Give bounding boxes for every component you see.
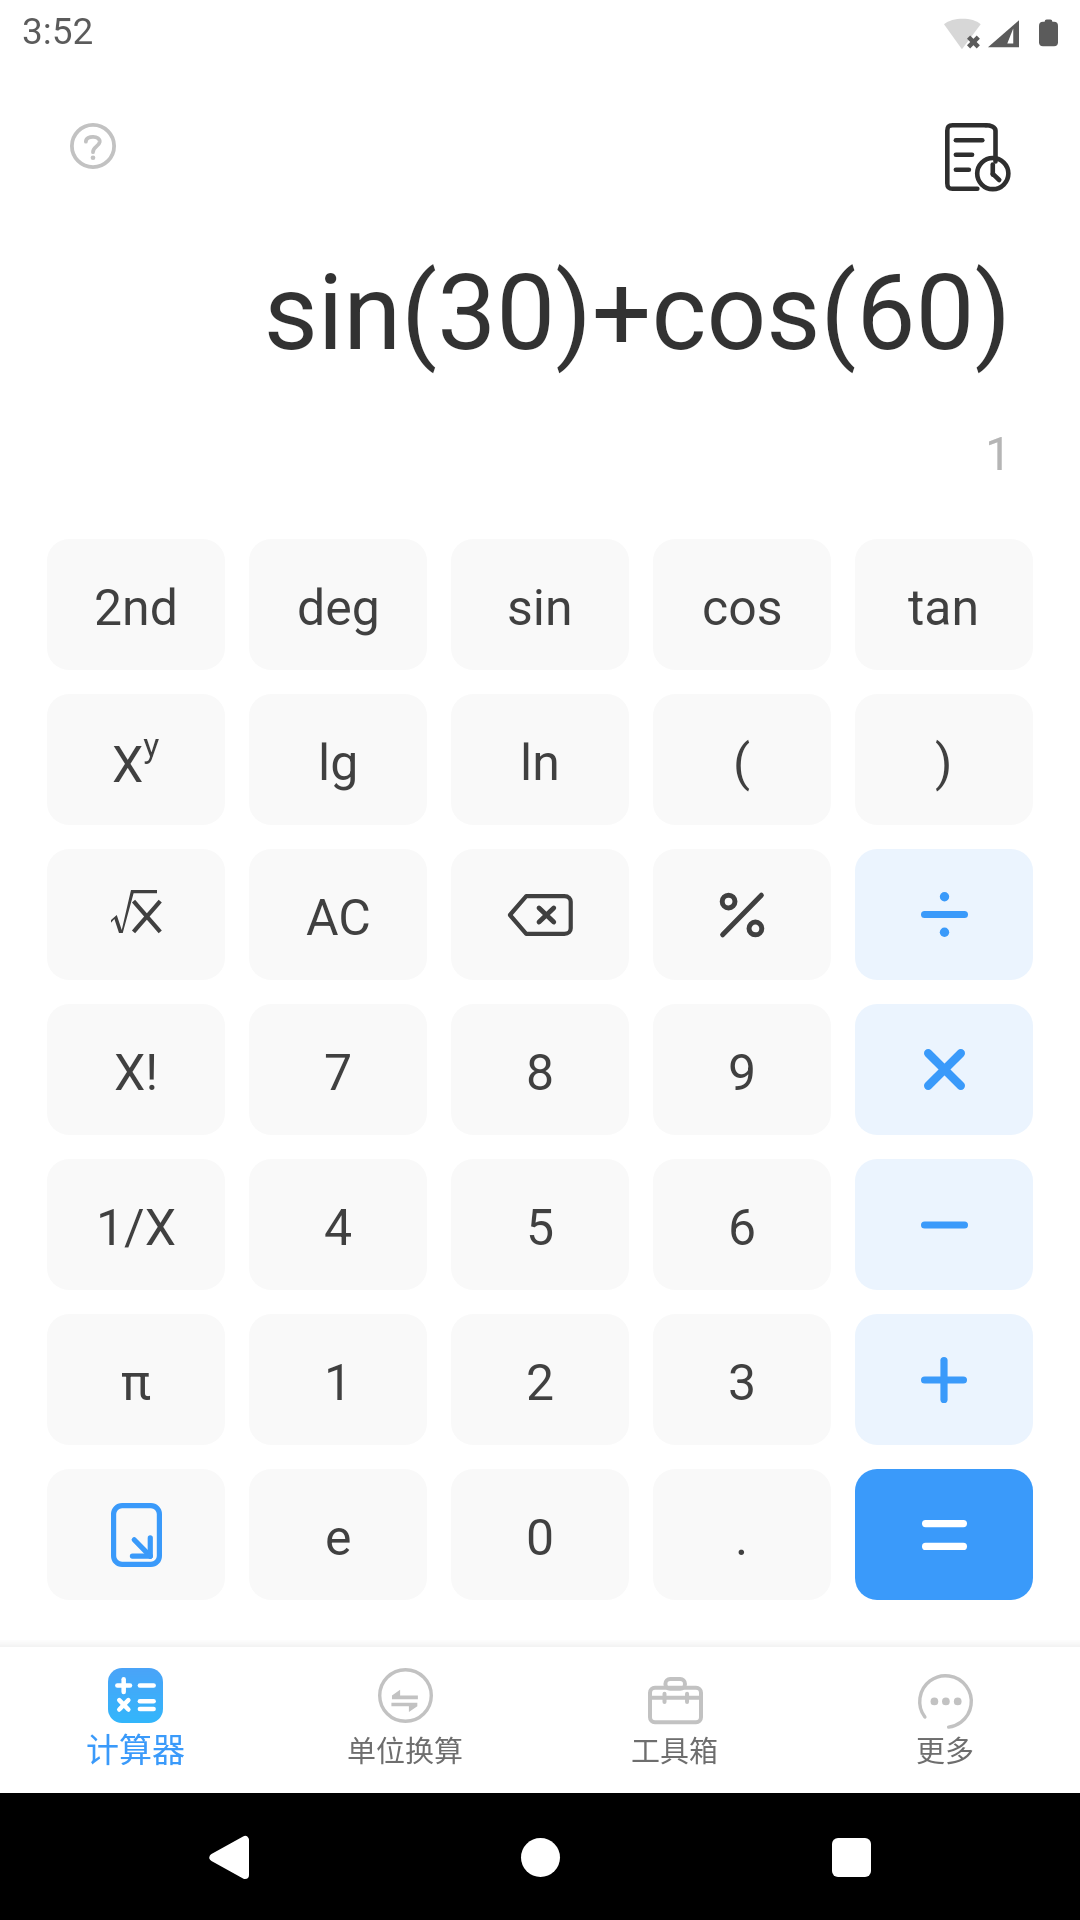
staticText: lg [318,734,359,793]
button[interactable]: 2nd [47,539,225,670]
button[interactable]: 单位换算 [270,1647,540,1793]
staticText: Xy [112,725,160,794]
staticText: cos [702,579,783,638]
button[interactable]: Home [495,1812,585,1902]
button[interactable]: Collapse keypad [47,1469,225,1600]
staticText: 2 [526,1354,555,1413]
staticText: 1/X [96,1199,177,1258]
button[interactable]: ln [451,694,629,825]
button[interactable]: Divide [855,849,1033,980]
staticText: sin(30)+cos(60) [0,252,1011,375]
button[interactable]: deg [249,539,427,670]
button[interactable]: Backspace [451,849,629,980]
staticText: 单位换算 [347,1728,464,1770]
button[interactable]: ( [653,694,831,825]
staticText: 3 [728,1354,757,1413]
button[interactable]: Percent [653,849,831,980]
staticText: sin [507,579,573,638]
button[interactable]: π [47,1314,225,1445]
button[interactable]: 9 [653,1004,831,1135]
staticText: tan [908,579,980,638]
button[interactable]: 8 [451,1004,629,1135]
staticText: 1 [0,427,1011,481]
staticText: ( [733,734,751,793]
staticText: π [121,1354,151,1413]
staticText: 更多 [916,1728,975,1770]
button[interactable]: 更多 [810,1647,1080,1793]
button[interactable]: Help [47,100,139,192]
button[interactable]: ) [855,694,1033,825]
button[interactable]: 7 [249,1004,427,1135]
staticText: 计算器 [86,1724,185,1772]
button[interactable]: 3 [653,1314,831,1445]
button[interactable]: 1 [249,1314,427,1445]
staticText: 5 [526,1199,555,1258]
button[interactable]: 2 [451,1314,629,1445]
staticText: ) [935,734,953,793]
staticText: AC [306,889,371,948]
staticText: 工具箱 [631,1728,719,1770]
button[interactable]: Multiply [855,1004,1033,1135]
button[interactable]: 计算器 [0,1647,270,1793]
button[interactable]: X! [47,1004,225,1135]
staticText: 3:52 [22,10,94,53]
button[interactable]: tan [855,539,1033,670]
staticText: X! [114,1044,159,1103]
staticText: 1 [324,1354,353,1413]
button[interactable]: 0 [451,1469,629,1600]
button[interactable]: Back [181,1812,271,1902]
button[interactable]: 工具箱 [540,1647,810,1793]
button[interactable]: Minus [855,1159,1033,1290]
button[interactable]: History [932,111,1024,203]
staticText: 2nd [94,579,178,638]
button[interactable]: Square root [47,849,225,980]
button[interactable]: sin [451,539,629,670]
button[interactable]: . [653,1469,831,1600]
staticText: 6 [728,1199,757,1258]
staticText: 9 [728,1044,757,1103]
button[interactable]: Equals [855,1469,1033,1600]
staticText: e [325,1509,352,1568]
staticText: 0 [526,1509,555,1568]
staticText: 8 [526,1044,555,1103]
button[interactable]: 1/X [47,1159,225,1290]
button[interactable]: Xy [47,694,225,825]
button[interactable]: cos [653,539,831,670]
staticText: ln [520,734,560,793]
staticText: 7 [324,1044,353,1103]
button[interactable]: AC [249,849,427,980]
button[interactable]: 6 [653,1159,831,1290]
staticText: . [735,1509,749,1568]
button[interactable]: lg [249,694,427,825]
staticText: deg [297,579,380,638]
button[interactable]: Recents [806,1812,896,1902]
button[interactable]: 4 [249,1159,427,1290]
button[interactable]: 5 [451,1159,629,1290]
button[interactable]: Plus [855,1314,1033,1445]
staticText: 4 [324,1199,353,1258]
button[interactable]: e [249,1469,427,1600]
